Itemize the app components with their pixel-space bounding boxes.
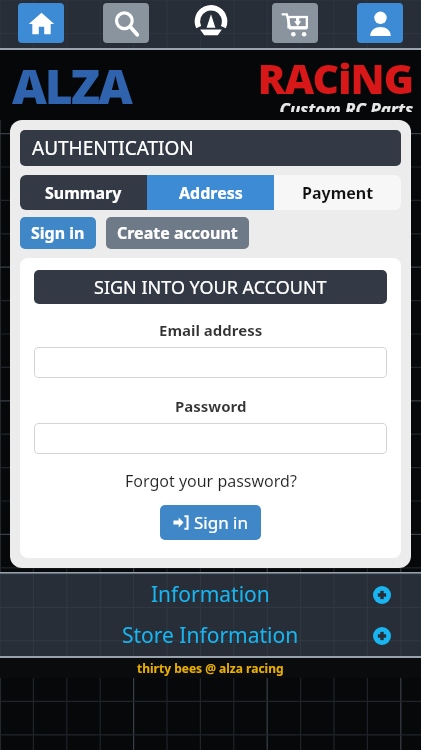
staticText: thirty bees @ alza racing xyxy=(137,660,284,676)
staticText: Summary xyxy=(45,182,122,204)
staticText: Address xyxy=(179,182,243,204)
staticText: Sign in xyxy=(31,222,85,244)
staticText: Payment xyxy=(302,182,374,204)
staticText: Create account xyxy=(117,222,238,244)
button[interactable]: Shopping cart xyxy=(272,3,318,43)
staticText: RACiNG xyxy=(131,50,413,106)
button[interactable]: Create account xyxy=(106,217,249,249)
button[interactable]: Alza Racing home xyxy=(188,2,234,44)
staticText: SIGN INTO YOUR ACCOUNT xyxy=(94,275,327,300)
button[interactable]: SIGN INTO YOUR ACCOUNT xyxy=(34,270,387,304)
staticText: AUTHENTICATION xyxy=(32,135,194,161)
staticText: Password xyxy=(175,396,247,416)
button[interactable]: Payment xyxy=(274,175,401,210)
staticText: ALZA xyxy=(12,53,131,118)
button[interactable]: AUTHENTICATION xyxy=(20,130,401,166)
button[interactable]: Sign in xyxy=(20,217,96,249)
staticText: Store Information xyxy=(122,621,299,650)
button[interactable]: Store Information xyxy=(0,615,421,656)
staticText: Sign in xyxy=(194,511,248,534)
staticText: Custom RC Parts xyxy=(131,98,413,112)
button[interactable]: Summary xyxy=(20,175,147,210)
button[interactable]: My account xyxy=(357,3,403,43)
staticText: Information xyxy=(151,580,270,609)
staticText: Email address xyxy=(159,320,263,340)
button[interactable]: Forgot your password? xyxy=(123,468,299,494)
button[interactable]: Home xyxy=(18,3,64,43)
button[interactable]: Sign in xyxy=(160,505,261,540)
button[interactable] xyxy=(34,347,387,378)
button[interactable]: Information xyxy=(0,574,421,615)
button[interactable]: Address xyxy=(147,175,274,210)
staticText: Forgot your password? xyxy=(125,470,297,492)
button[interactable]: Search xyxy=(103,3,149,43)
button[interactable] xyxy=(34,423,387,454)
